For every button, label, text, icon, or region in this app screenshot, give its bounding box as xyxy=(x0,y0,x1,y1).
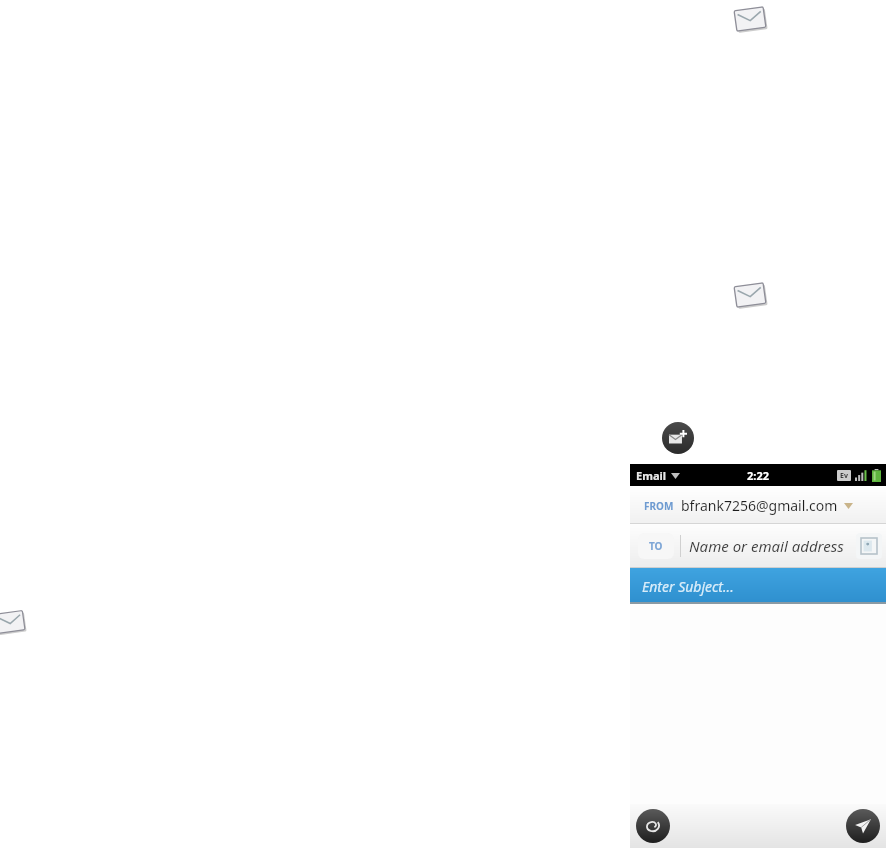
button[interactable]: Name or email address xyxy=(689,536,850,556)
button[interactable]: Pick contact xyxy=(856,533,882,559)
staticText: Ev xyxy=(840,471,848,481)
staticText: FROM xyxy=(644,499,674,513)
staticText: bfrank7256@gmail.com xyxy=(681,496,838,515)
staticText: Email xyxy=(636,468,667,483)
button[interactable]: Send xyxy=(846,809,880,843)
button[interactable]: FROM xyxy=(630,486,886,524)
button[interactable]: Email xyxy=(636,468,680,483)
staticText: TO xyxy=(649,539,663,553)
button[interactable]: Enter Subject... xyxy=(630,568,886,604)
button[interactable]: Attach file xyxy=(636,809,670,843)
button[interactable]: Compose new message xyxy=(662,422,694,454)
staticText: Name or email address xyxy=(689,536,844,556)
staticText: Enter Subject... xyxy=(642,577,734,596)
staticText: 2:22 xyxy=(747,468,769,483)
button[interactable]: TO xyxy=(638,533,674,559)
